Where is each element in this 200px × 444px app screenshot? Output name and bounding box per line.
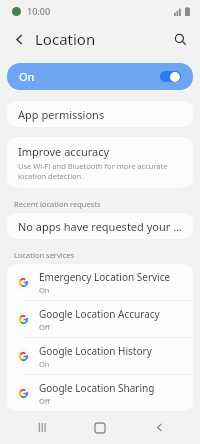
button[interactable]: Google Location History	[7, 338, 193, 374]
button[interactable]: Home	[83, 411, 117, 444]
button[interactable]: Search	[168, 27, 192, 51]
staticText: Location	[35, 29, 96, 49]
staticText: Emergency Location Service	[39, 270, 171, 284]
button[interactable]: Recents	[25, 411, 59, 444]
button[interactable]: Google Location Sharing	[7, 375, 193, 411]
button[interactable]: Back	[8, 28, 30, 50]
staticText: Off	[39, 396, 51, 406]
staticText: On	[19, 69, 35, 84]
staticText: No apps have requested your location r..	[18, 219, 182, 234]
button[interactable]: Improve accuracy	[7, 137, 193, 188]
staticText: Use Wi-Fi and Bluetooth for more accurat…	[18, 161, 182, 181]
button[interactable]: Back	[142, 411, 176, 444]
staticText: On	[39, 359, 50, 369]
button[interactable]: App permissions	[7, 101, 193, 127]
staticText: Improve accuracy	[18, 144, 110, 159]
button[interactable]: Google Location Accuracy	[7, 301, 193, 337]
staticText: App permissions	[18, 107, 105, 122]
button[interactable]: Emergency Location Service	[7, 264, 193, 300]
button[interactable]: On	[7, 63, 193, 90]
button[interactable]: No apps have requested your location r..	[7, 213, 193, 239]
staticText: Google Location Accuracy	[39, 307, 160, 321]
staticText: On	[39, 285, 50, 295]
staticText: Recent location requests	[14, 199, 101, 209]
staticText: Google Location History	[39, 344, 152, 358]
staticText: 10:00	[27, 5, 51, 17]
staticText: Location services	[14, 250, 75, 260]
staticText: Off	[39, 322, 51, 332]
staticText: Google Location Sharing	[39, 381, 155, 395]
